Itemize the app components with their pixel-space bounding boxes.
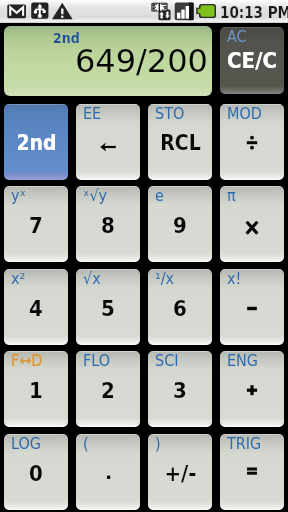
button[interactable]: Equals xyxy=(220,434,284,510)
staticText: 10:13 PM xyxy=(220,4,288,21)
staticText: 4 xyxy=(29,296,43,322)
staticText: 9 xyxy=(173,213,187,239)
staticText: SCI xyxy=(155,351,179,370)
button[interactable]: Plus xyxy=(220,351,284,427)
button[interactable]: RCL xyxy=(148,104,212,180)
staticText: π xyxy=(227,186,236,205)
staticText: 2nd xyxy=(53,30,80,46)
staticText: MOD xyxy=(227,104,262,123)
staticText: 2 xyxy=(101,378,115,404)
staticText: ¹/x xyxy=(155,269,175,288)
staticText: TRIG xyxy=(227,434,262,453)
button[interactable]: 9 xyxy=(148,186,212,262)
staticText: 0 xyxy=(29,461,43,487)
staticText: 7 xyxy=(29,213,43,239)
staticText: FLO xyxy=(83,351,111,370)
button[interactable]: 0 xyxy=(4,434,68,510)
button[interactable]: 2nd xyxy=(4,26,212,96)
staticText: F↔D xyxy=(11,351,43,370)
staticText: yˣ xyxy=(11,186,26,205)
staticText: STO xyxy=(155,104,185,123)
button[interactable]: 2nd function xyxy=(4,104,68,180)
staticText: ˣ√y xyxy=(83,186,108,205)
button[interactable]: Decimal point xyxy=(76,434,140,510)
button[interactable]: 3 xyxy=(148,351,212,427)
staticText: 3 xyxy=(173,378,187,404)
staticText: 1 xyxy=(29,378,43,404)
staticText: √x xyxy=(83,269,101,288)
button[interactable]: Multiply xyxy=(220,186,284,262)
staticText: x² xyxy=(11,269,26,288)
staticText: ) xyxy=(155,434,161,453)
staticText: 5 xyxy=(101,296,115,322)
button[interactable]: Clear xyxy=(220,27,284,94)
button[interactable]: Divide xyxy=(220,104,284,180)
staticText: LOG xyxy=(11,434,41,453)
staticText: 6 xyxy=(173,296,187,322)
button[interactable]: 6 xyxy=(148,269,212,345)
button[interactable]: 5 xyxy=(76,269,140,345)
staticText: EE xyxy=(83,104,102,123)
button[interactable]: 2 xyxy=(76,351,140,427)
staticText: CE/C xyxy=(227,48,277,74)
staticText: 649/200 xyxy=(75,42,208,79)
staticText: AC xyxy=(227,27,247,46)
staticText: ( xyxy=(83,434,89,453)
button[interactable]: 7 xyxy=(4,186,68,262)
button[interactable]: 8 xyxy=(76,186,140,262)
button[interactable]: 1 xyxy=(4,351,68,427)
button[interactable]: Minus xyxy=(220,269,284,345)
staticText: 2nd xyxy=(16,131,57,155)
staticText: x! xyxy=(227,269,242,288)
button[interactable]: +/- xyxy=(148,434,212,510)
staticText: +/- xyxy=(164,461,197,487)
staticText: 8 xyxy=(101,213,115,239)
staticText: ENG xyxy=(227,351,259,370)
button[interactable]: 4 xyxy=(4,269,68,345)
staticText: e xyxy=(155,186,164,205)
button[interactable]: Backspace xyxy=(76,104,140,180)
staticText: RCL xyxy=(160,131,201,155)
